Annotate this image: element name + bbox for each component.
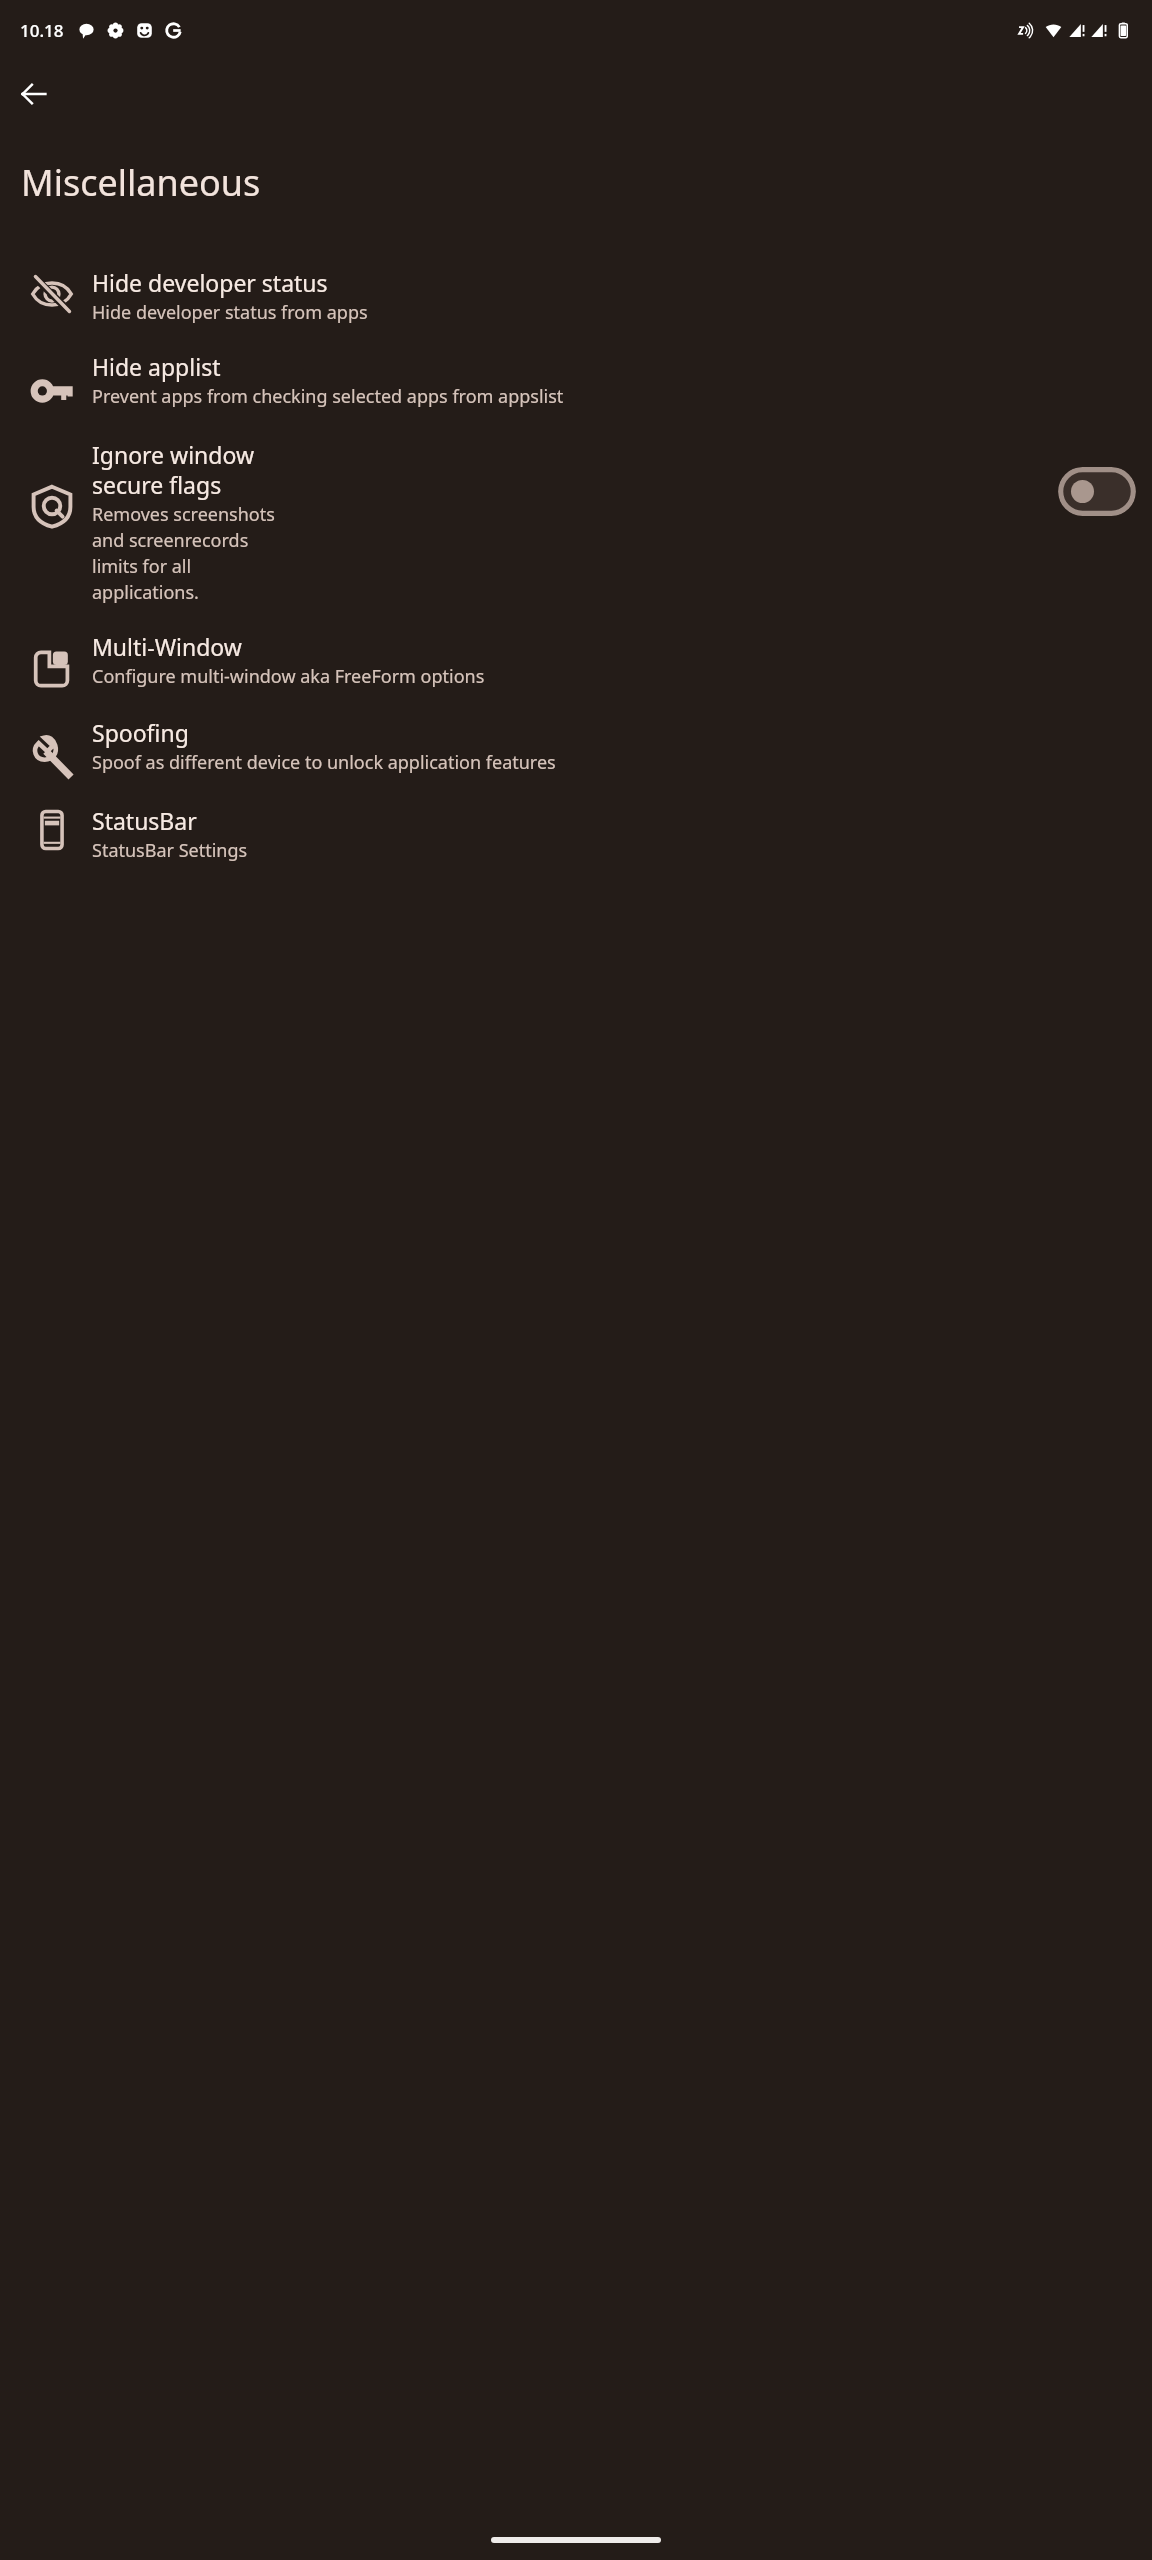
staticText: Configure multi-window aka FreeForm opti… [92,664,485,689]
staticText: Spoof as different device to unlock appl… [92,750,556,775]
button[interactable]: Spoofing [0,703,1152,791]
staticText: Ignore window secure flags [92,439,292,500]
button[interactable]: StatusBar [0,791,1152,875]
staticText: Multi-Window [92,631,242,662]
button[interactable]: Multi-Window [0,617,1152,703]
button[interactable]: Hide developer status [0,253,1152,337]
staticText: Removes screenshots and screenrecords li… [92,502,292,605]
staticText: 10.18 [20,19,64,42]
button[interactable]: Back [10,70,58,118]
staticText: StatusBar Settings [92,838,248,863]
staticText: Prevent apps from checking selected apps… [92,384,564,409]
staticText: Spoofing [92,717,189,748]
button[interactable]: Ignore window secure flags [0,425,1152,617]
button[interactable]: Hide applist [0,337,1152,425]
staticText: Hide applist [92,351,221,382]
staticText: StatusBar [92,805,197,836]
staticText: Hide developer status from apps [92,300,368,325]
button[interactable]: Ignore window secure flags toggle [1058,467,1136,516]
staticText: Miscellaneous [21,158,261,207]
staticText: Hide developer status [92,267,328,298]
